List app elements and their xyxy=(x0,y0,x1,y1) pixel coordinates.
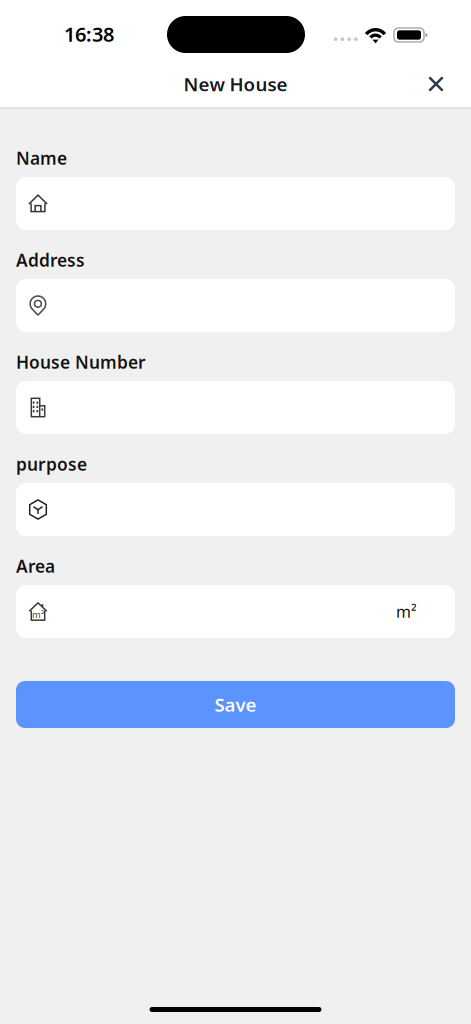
staticText: Address xyxy=(16,248,85,271)
staticText: m² xyxy=(32,608,44,621)
button[interactable]: Name xyxy=(16,177,455,230)
button[interactable]: Address xyxy=(16,279,455,332)
button[interactable]: Save xyxy=(16,681,455,728)
button[interactable]: Area xyxy=(16,585,455,638)
staticText: Name xyxy=(16,146,67,169)
staticText: 16:38 xyxy=(64,21,114,47)
staticText: House Number xyxy=(16,350,146,373)
staticText: purpose xyxy=(16,452,87,475)
button[interactable]: Close xyxy=(414,62,458,106)
button[interactable]: House Number xyxy=(16,381,455,434)
staticText: Save xyxy=(214,692,256,717)
staticText: Area xyxy=(16,554,55,577)
staticText: m² xyxy=(396,601,417,622)
button[interactable]: purpose xyxy=(16,483,455,536)
staticText: New House xyxy=(183,72,287,96)
